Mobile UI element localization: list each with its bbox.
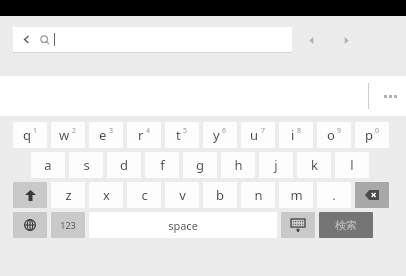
staticText: m	[290, 186, 303, 204]
staticText: 5	[183, 126, 188, 136]
button[interactable]: b	[203, 182, 237, 208]
staticText: 7	[261, 126, 266, 136]
staticText: n	[254, 186, 263, 204]
staticText: f	[160, 156, 165, 174]
staticText: x	[103, 186, 110, 204]
button[interactable]: k	[297, 152, 331, 178]
button[interactable]: x	[89, 182, 123, 208]
staticText: 8	[297, 126, 302, 136]
staticText: 検索	[335, 218, 357, 232]
staticText: e	[99, 126, 107, 144]
button[interactable]: i	[279, 122, 313, 148]
staticText: h	[234, 156, 243, 174]
button[interactable]: Backspace	[355, 182, 389, 208]
staticText: w	[59, 126, 70, 144]
staticText: 3	[109, 126, 114, 136]
staticText: l	[350, 156, 354, 174]
staticText: s	[83, 156, 90, 174]
staticText: 6	[222, 126, 227, 136]
button[interactable]: space	[89, 212, 277, 238]
button[interactable]: 検索	[319, 212, 373, 238]
staticText: d	[120, 156, 128, 174]
button[interactable]: j	[259, 152, 293, 178]
staticText: u	[250, 126, 259, 144]
staticText: r	[138, 126, 144, 144]
staticText: space	[168, 218, 198, 233]
staticText: 123	[60, 219, 76, 231]
button[interactable]: Shift	[13, 182, 47, 208]
button[interactable]: p	[355, 122, 389, 148]
staticText: i	[291, 126, 295, 144]
button[interactable]: u	[241, 122, 275, 148]
staticText: 2	[72, 126, 77, 136]
staticText: p	[365, 126, 373, 144]
staticText: 4	[146, 126, 151, 136]
button[interactable]: l	[335, 152, 369, 178]
button[interactable]: t	[165, 122, 199, 148]
button[interactable]: z	[51, 182, 85, 208]
button[interactable]: m	[279, 182, 313, 208]
button[interactable]: v	[165, 182, 199, 208]
staticText: b	[216, 186, 224, 204]
button[interactable]: d	[107, 152, 141, 178]
button[interactable]: Back	[22, 35, 31, 44]
button[interactable]: h	[221, 152, 255, 178]
button[interactable]: Next	[335, 29, 357, 51]
button[interactable]: Previous	[300, 29, 322, 51]
staticText: o	[327, 126, 335, 144]
button[interactable]: c	[127, 182, 161, 208]
button[interactable]: 123	[51, 212, 85, 238]
staticText: q	[23, 126, 31, 144]
button[interactable]: n	[241, 182, 275, 208]
staticText: .	[332, 186, 336, 204]
staticText: j	[274, 156, 278, 174]
button[interactable]: Change language	[13, 212, 47, 238]
button[interactable]: q	[13, 122, 47, 148]
button[interactable]: g	[183, 152, 217, 178]
staticText: k	[311, 156, 318, 174]
button[interactable]: More options	[374, 76, 406, 116]
button[interactable]: w	[51, 122, 85, 148]
button[interactable]: Back	[13, 27, 292, 52]
button[interactable]: e	[89, 122, 123, 148]
staticText: z	[65, 186, 72, 204]
button[interactable]: Hide keyboard	[281, 212, 315, 238]
staticText: t	[176, 126, 181, 144]
button[interactable]: s	[69, 152, 103, 178]
other: Search	[40, 35, 50, 45]
button[interactable]: o	[317, 122, 351, 148]
staticText: v	[179, 186, 186, 204]
staticText: g	[196, 156, 204, 174]
button[interactable]: f	[145, 152, 179, 178]
button[interactable]: .	[317, 182, 351, 208]
staticText: 1	[33, 126, 38, 136]
staticText: c	[141, 186, 148, 204]
button[interactable]: y	[203, 122, 237, 148]
staticText: y	[213, 126, 220, 144]
button[interactable]: a	[31, 152, 65, 178]
staticText: a	[44, 156, 52, 174]
staticText: 9	[337, 126, 342, 136]
button[interactable]: r	[127, 122, 161, 148]
staticText: 0	[375, 126, 380, 136]
